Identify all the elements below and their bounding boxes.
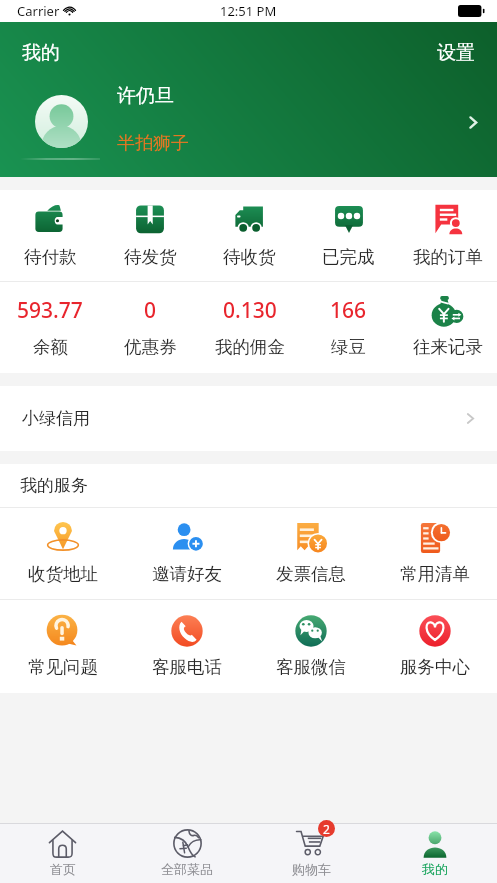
staticText: 全部菜品 — [161, 861, 213, 877]
staticText: 12:51 PM — [220, 2, 277, 20]
button[interactable]: 小绿信用 — [0, 386, 497, 451]
staticText: 常见问题 — [28, 656, 98, 678]
button[interactable]: 客服电话 — [125, 600, 249, 693]
other: Open credit — [463, 411, 478, 426]
staticText: 客服电话 — [152, 656, 222, 678]
button[interactable]: My account — [373, 823, 497, 883]
button[interactable]: Home — [0, 823, 125, 883]
staticText: 发票信息 — [276, 563, 346, 585]
staticText: 我的 — [422, 861, 448, 877]
button[interactable]: 我的订单 — [398, 190, 497, 281]
staticText: 收货地址 — [28, 563, 98, 585]
staticText: 服务中心 — [400, 656, 470, 678]
staticText: 客服微信 — [276, 656, 346, 678]
staticText: 我的佣金 — [215, 336, 285, 358]
button[interactable]: 许仍旦 — [0, 22, 497, 177]
staticText: 往来记录 — [413, 336, 483, 358]
button[interactable]: All dishes — [125, 823, 249, 883]
staticText: 邀请好友 — [152, 563, 222, 585]
button[interactable]: 已完成 — [299, 190, 398, 281]
button[interactable]: 邀请好友 — [125, 508, 249, 599]
other: Profile details — [465, 114, 482, 131]
staticText: 待付款 — [24, 246, 77, 268]
button[interactable]: 待收货 — [200, 190, 299, 281]
staticText: 小绿信用 — [22, 408, 90, 429]
staticText: 166 — [330, 296, 367, 325]
button[interactable]: 设置 — [437, 41, 475, 65]
button[interactable]: 收货地址 — [0, 508, 125, 599]
staticText: 首页 — [50, 861, 76, 877]
staticText: 待收货 — [223, 246, 276, 268]
staticText: 半拍狮子 — [117, 132, 189, 155]
button[interactable]: 常用清单 — [373, 508, 497, 599]
button[interactable]: 我的 — [22, 41, 60, 65]
button[interactable]: 服务中心 — [373, 600, 497, 693]
staticText: 许仍旦 — [117, 84, 174, 108]
staticText: 待发货 — [124, 246, 177, 268]
staticText: Carrier — [17, 2, 60, 20]
other: Shopping cart, 2 items — [286, 829, 336, 859]
button[interactable]: 往来记录 — [398, 282, 497, 373]
button[interactable]: 待发货 — [100, 190, 200, 281]
staticText: 余额 — [33, 336, 68, 358]
button[interactable]: 客服微信 — [249, 600, 373, 693]
button[interactable]: 593.77 — [0, 282, 100, 373]
staticText: 0.130 — [223, 296, 277, 325]
other: My account — [420, 829, 450, 859]
staticText: 2 — [323, 821, 330, 837]
other: Home — [48, 829, 77, 858]
staticText: 0 — [144, 296, 157, 325]
other: All dishes — [173, 829, 202, 858]
button[interactable]: 发票信息 — [249, 508, 373, 599]
button[interactable]: 待付款 — [0, 190, 100, 281]
button[interactable]: 常见问题 — [0, 600, 125, 693]
button[interactable]: 166 — [299, 282, 398, 373]
staticText: 绿豆 — [331, 336, 366, 358]
staticText: 我的订单 — [413, 246, 483, 268]
button[interactable]: 0 — [100, 282, 200, 373]
staticText: 优惠券 — [124, 336, 177, 358]
button[interactable]: 0.130 — [200, 282, 299, 373]
staticText: 常用清单 — [400, 563, 470, 585]
staticText: 购物车 — [292, 861, 331, 877]
staticText: 已完成 — [322, 246, 375, 268]
staticText: 我的服务 — [20, 475, 88, 496]
staticText: 593.77 — [17, 296, 83, 325]
button[interactable]: Shopping cart, 2 items — [249, 823, 373, 883]
